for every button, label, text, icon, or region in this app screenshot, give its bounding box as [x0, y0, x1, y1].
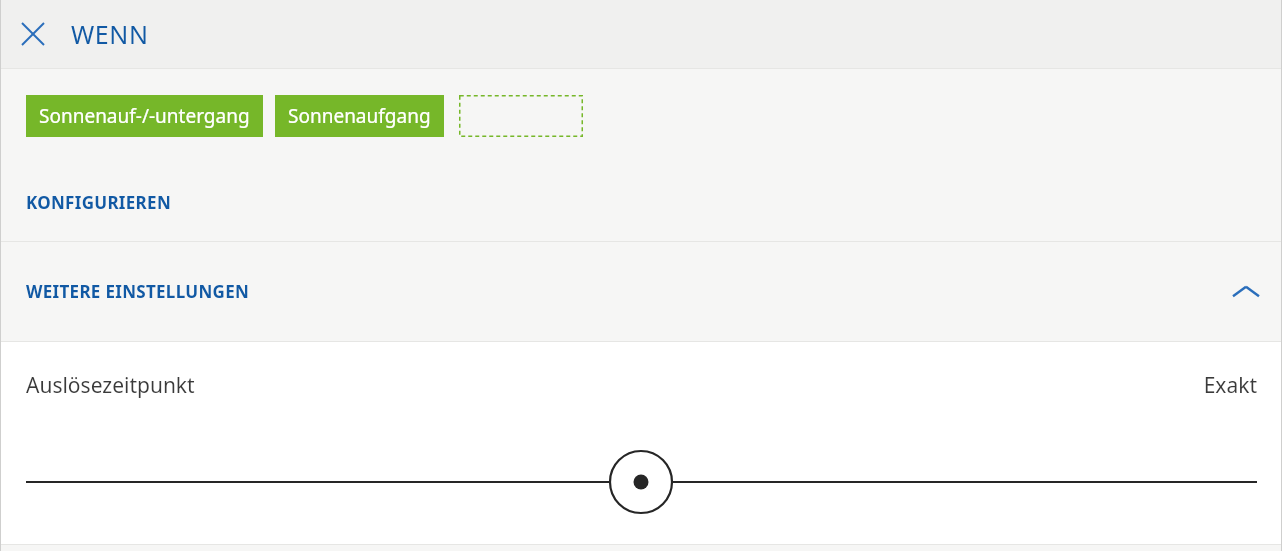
staticText: KONFIGURIEREN — [26, 191, 171, 214]
button[interactable]: Sonnenauf-/-untergang — [26, 95, 263, 137]
staticText: Sonnenaufgang — [288, 103, 431, 129]
button[interactable]: WEITERE EINSTELLUNGEN — [0, 242, 1282, 341]
button[interactable]: Schließen — [16, 17, 50, 51]
staticText: Exakt — [1203, 371, 1257, 400]
other: Einklappen — [1224, 270, 1268, 314]
button[interactable]: Auslösezeitpunkt Schieberegler — [0, 446, 1282, 518]
button[interactable]: Leeres Feld — [459, 95, 583, 137]
staticText: Auslösezeitpunkt — [26, 371, 195, 400]
staticText: WENN — [71, 17, 149, 51]
staticText: Sonnenauf-/-untergang — [39, 103, 250, 129]
button[interactable]: KONFIGURIEREN — [0, 185, 1282, 219]
button[interactable]: Auslösezeitpunkt — [0, 342, 1282, 428]
staticText: WEITERE EINSTELLUNGEN — [26, 280, 250, 303]
button[interactable]: Sonnenaufgang — [275, 95, 444, 137]
